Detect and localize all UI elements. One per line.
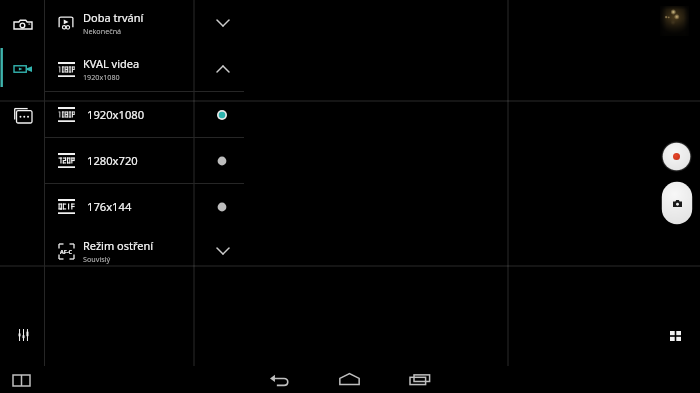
button[interactable]: KVAL videa	[45, 46, 244, 92]
button[interactable]: Grid	[663, 324, 687, 347]
button[interactable]: Home	[333, 367, 366, 391]
button[interactable]: Doba trvání	[45, 0, 244, 46]
staticText: 1280x720	[87, 153, 198, 168]
staticText: Nekonečná	[83, 26, 122, 36]
staticText: 176x144	[87, 199, 198, 214]
staticText: Doba trvání	[83, 10, 144, 25]
button[interactable]: Split screen	[7, 369, 36, 392]
staticText: Souvislý	[83, 254, 111, 264]
button[interactable]: Recents	[404, 368, 436, 391]
button[interactable]: Record	[661, 141, 692, 172]
button[interactable]: 176x144	[45, 184, 244, 229]
staticText: AF-C	[60, 248, 73, 255]
button[interactable]: Take picture	[661, 181, 693, 225]
staticText: KVAL videa	[83, 56, 140, 71]
button[interactable]: 1920x1080	[45, 92, 244, 137]
button[interactable]: Back	[264, 367, 295, 392]
button[interactable]: Video mode	[7, 53, 39, 85]
button[interactable]: More modes	[7, 99, 39, 131]
button[interactable]: Gallery	[660, 6, 689, 36]
button[interactable]: Settings	[7, 319, 39, 351]
button[interactable]: Photo mode	[7, 8, 39, 40]
staticText: 1920x1080	[87, 107, 198, 122]
staticText: 1920x1080	[83, 72, 120, 82]
button[interactable]: 1280x720	[45, 138, 244, 183]
button[interactable]: AF-C	[45, 228, 244, 274]
staticText: Režim ostření	[83, 238, 154, 253]
